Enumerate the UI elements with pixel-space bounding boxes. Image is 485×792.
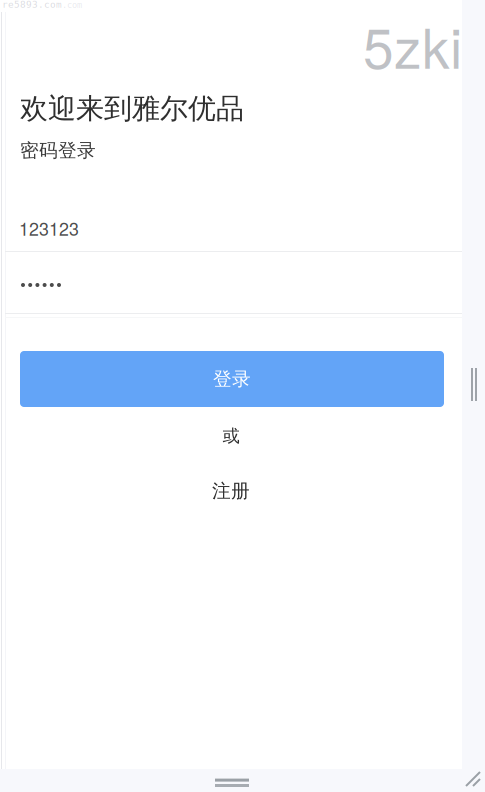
button[interactable]: 注册 (193, 476, 269, 506)
staticText: .com (62, 0, 82, 10)
staticText: 欢迎来到雅尔优品 (20, 91, 244, 126)
staticText: 注册 (212, 479, 250, 502)
staticText: 密码登录 (20, 139, 96, 162)
staticText: 5zki (363, 5, 462, 84)
staticText: 或 (222, 425, 239, 447)
button[interactable]: 登录 (20, 351, 444, 407)
button[interactable]: 123123 (19, 206, 462, 250)
staticText: re5893.com (2, 0, 62, 10)
staticText: 123123 (19, 215, 79, 241)
button[interactable]: Password (21, 255, 462, 314)
staticText: 登录 (213, 367, 251, 390)
